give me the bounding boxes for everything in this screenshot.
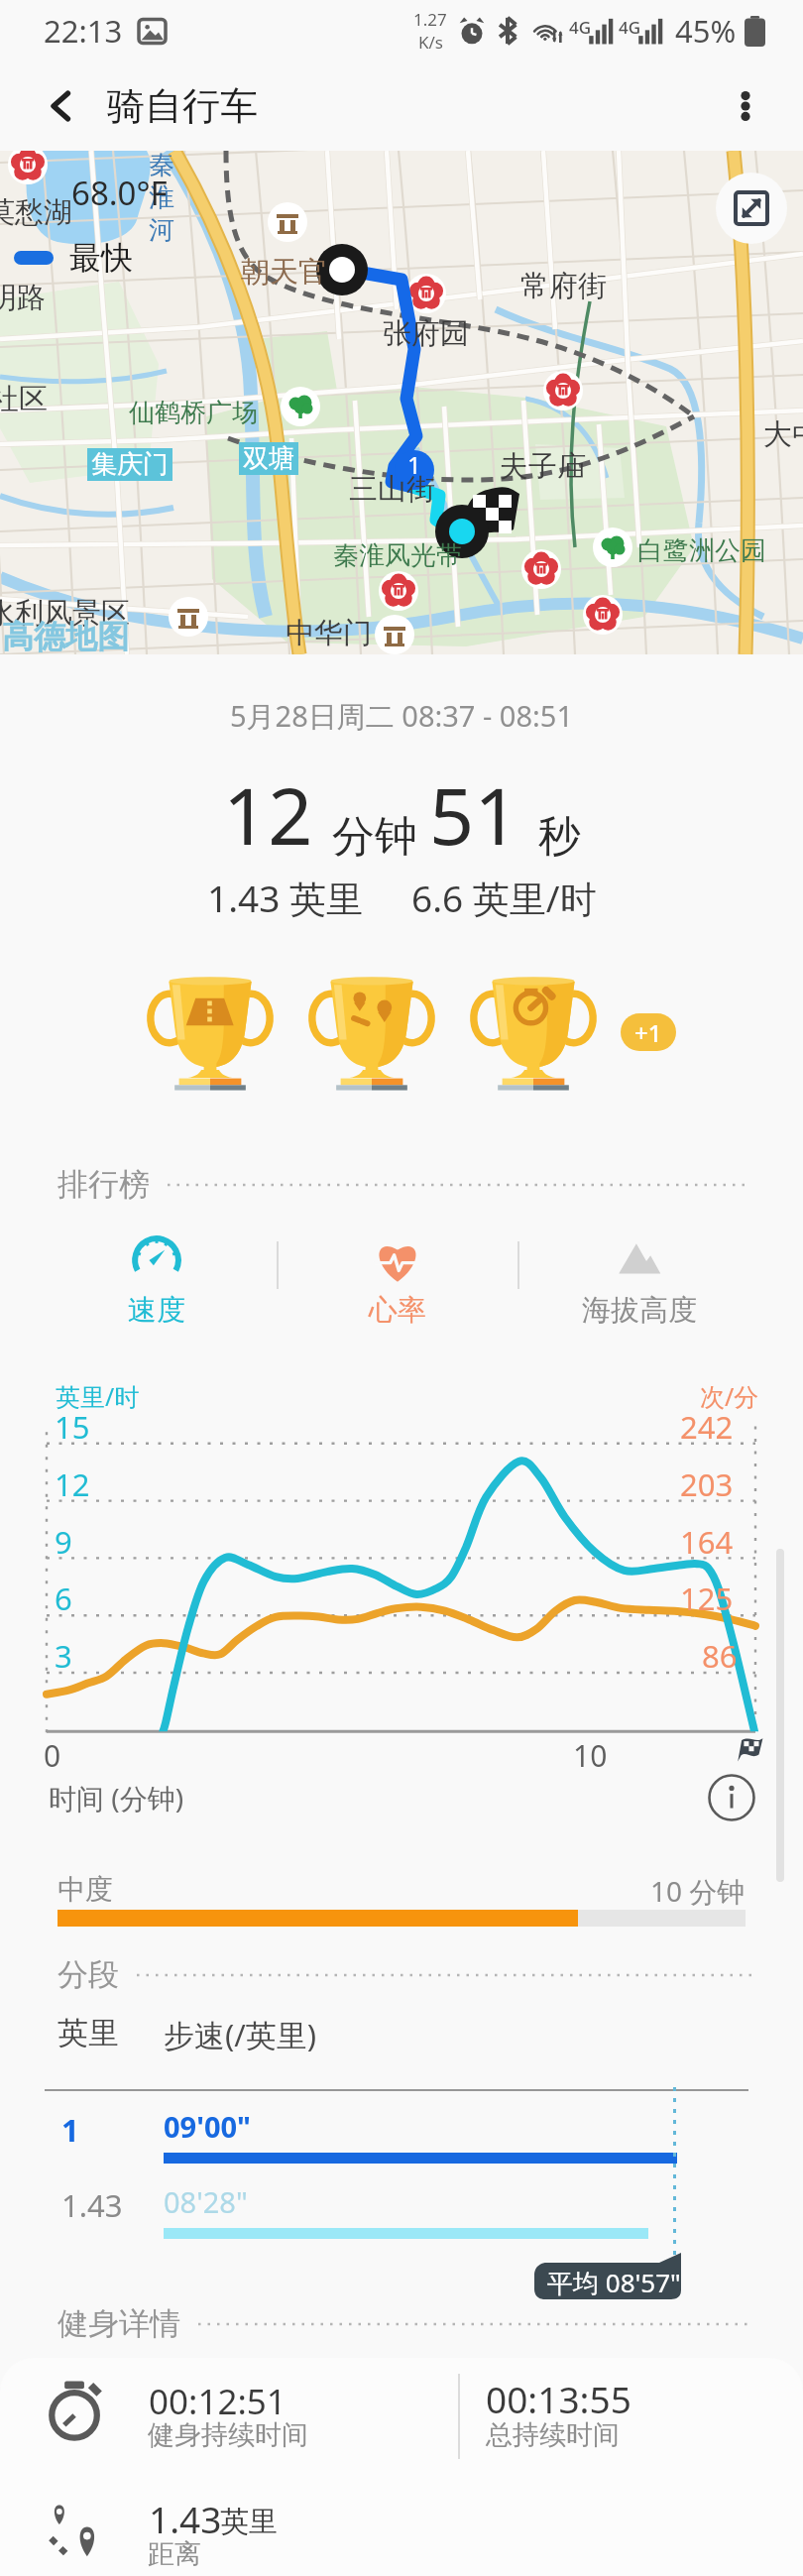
staticText: 3 (55, 1635, 72, 1677)
staticText: 海拔高度 (582, 1292, 697, 1329)
staticText: 英里 (57, 2014, 119, 2052)
staticText: 河 (149, 214, 174, 247)
staticText: 英里 (220, 2504, 278, 2540)
staticText: 51 (429, 761, 519, 869)
staticText: 莫愁湖 (0, 194, 72, 231)
staticText: 分钟 (332, 810, 417, 864)
staticText: 10 分钟 (650, 1872, 746, 1910)
staticText: 高德地图 (2, 617, 129, 654)
staticText: 242 (680, 1406, 734, 1448)
staticText: 排行榜 (57, 1165, 150, 1204)
staticText: 164 (680, 1521, 734, 1563)
staticText: 09'00" (164, 2107, 251, 2146)
staticText: 距离 (148, 2537, 201, 2571)
staticText: 6 (55, 1578, 72, 1619)
staticText: 1.43 英里 (207, 873, 364, 923)
staticText: 0 (44, 1735, 61, 1776)
staticText: 4G (569, 16, 592, 39)
staticText: 最快 (69, 238, 133, 278)
staticText: 骑自行车 (107, 82, 258, 130)
staticText: 常府街 (520, 268, 607, 304)
staticText: K/s (418, 31, 443, 54)
staticText: 中华门 (286, 615, 372, 651)
staticText: 秦 (149, 151, 174, 181)
button[interactable] (0, 2477, 803, 2576)
staticText: 秦淮风光带 (333, 539, 462, 572)
button[interactable]: Distance badge (147, 967, 274, 1096)
staticText: 203 (680, 1464, 734, 1505)
staticText: 86 (702, 1635, 738, 1677)
staticText: 1.27 (413, 8, 447, 31)
staticText: 健身持续时间 (148, 2418, 308, 2452)
staticText: 00:12:51 (149, 2378, 287, 2425)
button[interactable]: Route badge (308, 967, 435, 1096)
staticText: 1.43 (149, 2494, 222, 2543)
staticText: 淮 (149, 181, 174, 214)
staticText: 时间 (分钟) (49, 1779, 184, 1816)
staticText: 水利风景区 (0, 595, 130, 632)
staticText: 大中 (763, 416, 803, 453)
staticText: 张府园 (383, 315, 469, 352)
staticText: 秒 (538, 810, 581, 864)
staticText: 双塘 (243, 442, 294, 475)
staticText: 英里/时 (56, 1379, 140, 1413)
staticText: 9 (55, 1521, 72, 1563)
staticText: 平均 08'57" (547, 2265, 681, 2300)
button[interactable]: 心率 (313, 1226, 482, 1345)
staticText: 12 (55, 1464, 90, 1505)
button[interactable]: +1 (621, 1013, 676, 1051)
staticText: 08'28" (164, 2182, 248, 2221)
staticText: 白鹭洲公园 (637, 534, 766, 567)
staticText: 10 (573, 1735, 608, 1776)
staticText: 次/分 (700, 1379, 759, 1413)
button[interactable] (0, 2362, 803, 2471)
staticText: 集庆门 (91, 448, 169, 481)
button[interactable]: 海拔高度 (555, 1226, 724, 1345)
staticText: 朝天官 (241, 254, 327, 291)
staticText: 1.43 (61, 2184, 123, 2226)
button[interactable]: Time badge (470, 967, 597, 1096)
staticText: 12 (223, 761, 313, 869)
staticText: 分段 (57, 1955, 119, 1994)
staticText: 1 (61, 2109, 79, 2151)
button[interactable]: More options (714, 74, 777, 138)
staticText: 夫子庙 (500, 448, 586, 485)
button[interactable]: Back (30, 74, 93, 138)
staticText: +1 (634, 1016, 662, 1049)
staticText: 心率 (369, 1292, 426, 1329)
staticText: 仙鹤桥广场 (129, 397, 258, 429)
staticText: 速度 (128, 1292, 185, 1329)
staticText: 1 (407, 448, 421, 476)
button[interactable]: Expand map (716, 173, 787, 244)
button[interactable]: 速度 (72, 1226, 241, 1345)
staticText: 中度 (57, 1872, 113, 1907)
staticText: 15 (55, 1406, 90, 1448)
button[interactable]: Info (708, 1774, 755, 1821)
staticText: 明路 (0, 280, 46, 316)
staticText: 总持续时间 (486, 2418, 620, 2452)
staticText: 5月28日周二 08:37 - 08:51 (230, 696, 573, 736)
staticText: 社区 (0, 381, 48, 417)
staticText: 步速(/英里) (164, 2014, 317, 2055)
staticText: 三山街 (349, 471, 435, 508)
staticText: 22:13 (44, 10, 123, 52)
staticText: 00:13:55 (486, 2374, 631, 2423)
staticText: 125 (680, 1578, 734, 1619)
staticText: 4G (619, 16, 641, 39)
staticText: 68.0°F (71, 171, 168, 215)
staticText: 45% (675, 10, 737, 52)
staticText: 6.6 英里/时 (411, 873, 597, 923)
staticText: 健身详情 (57, 2304, 180, 2343)
